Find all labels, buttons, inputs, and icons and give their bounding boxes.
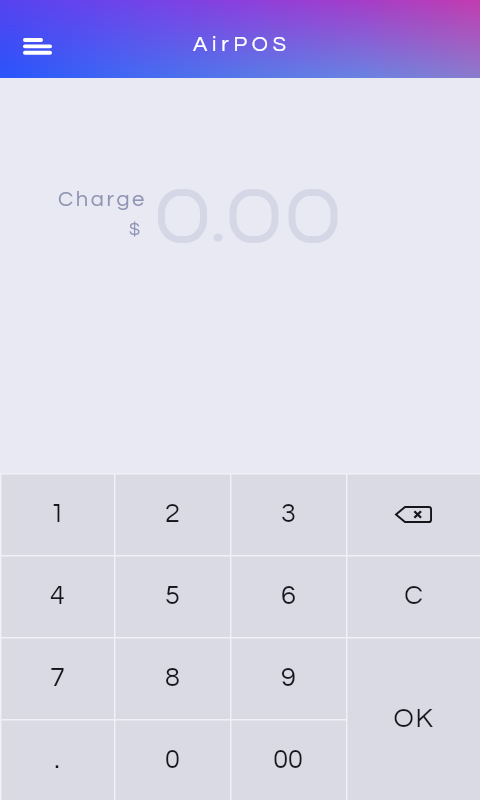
staticText: 1 [50,500,65,528]
staticText: 2 [165,500,180,528]
staticText: 5 [165,582,180,610]
staticText: . [54,746,60,774]
button[interactable]: 8 [114,637,230,719]
button[interactable]: C [346,555,480,637]
staticText: 8 [165,664,180,692]
staticText: OK [393,705,435,733]
staticText: 3 [281,500,296,528]
button[interactable]: 5 [114,555,230,637]
staticText: Charge [58,188,147,211]
staticText: 9 [281,664,296,692]
button[interactable]: Open navigation menu [0,18,76,74]
button[interactable]: Backspace [346,473,480,555]
button[interactable]: . [0,719,114,800]
button[interactable]: 0 [114,719,230,800]
button[interactable]: OK [346,637,480,800]
button[interactable]: 00 [230,719,346,800]
button[interactable]: 6 [230,555,346,637]
staticText: 00 [273,746,303,774]
staticText: 0 [165,746,180,774]
staticText: $ [129,220,141,239]
button[interactable]: 3 [230,473,346,555]
button[interactable]: 9 [230,637,346,719]
button[interactable]: 2 [114,473,230,555]
button[interactable]: 4 [0,555,114,637]
button[interactable]: 1 [0,473,114,555]
staticText: 6 [281,582,296,610]
staticText: C [404,582,423,610]
staticText: 4 [50,582,65,610]
staticText: 7 [50,664,65,692]
staticText: AirPOS [193,33,291,55]
button[interactable]: 7 [0,637,114,719]
